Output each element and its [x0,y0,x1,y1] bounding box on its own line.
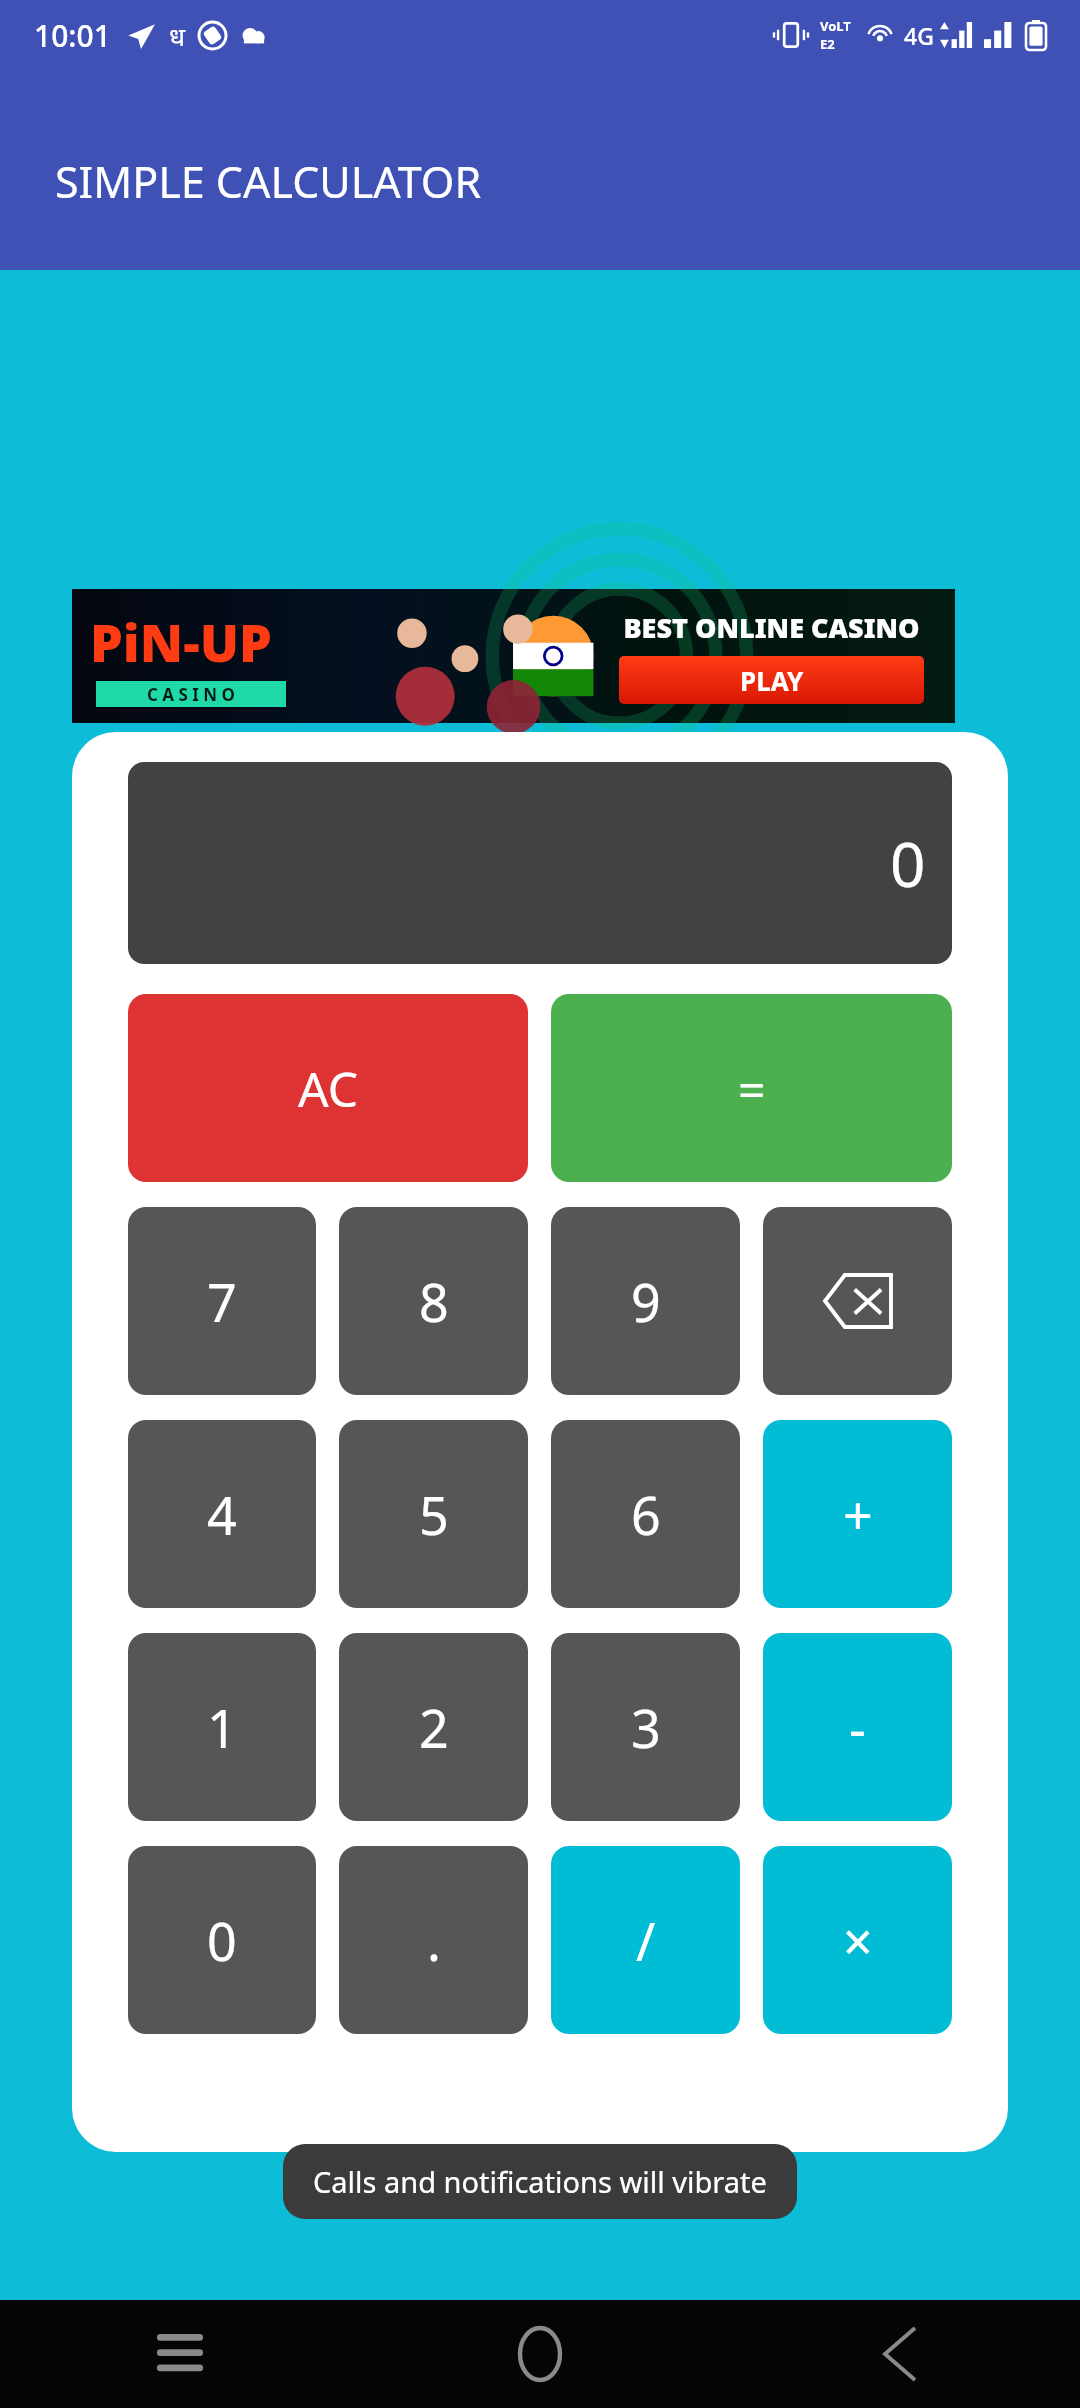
button[interactable]: AC [128,994,528,1182]
button[interactable]: 5 [339,1420,528,1608]
button[interactable]: 3 [551,1633,740,1821]
staticText: + [843,1479,873,1550]
staticText: 5 [419,1479,449,1550]
button[interactable]: Recent apps [0,2300,360,2408]
staticText: - [849,1692,866,1763]
staticText: SIMPLE CALCULATOR [55,152,482,211]
button[interactable]: × [763,1846,952,2034]
button[interactable]: 7 [128,1207,316,1395]
button[interactable]: 2 [339,1633,528,1821]
staticText: AC [298,1056,359,1121]
button[interactable]: / [551,1846,740,2034]
button[interactable]: . [339,1846,528,2034]
staticText: 10:01 [34,15,111,56]
staticText: ध [169,18,185,53]
staticText: × [843,1905,873,1976]
staticText: 9 [631,1266,661,1337]
button[interactable]: 6 [551,1420,740,1608]
staticText: PiN-UP [90,606,272,677]
staticText: PLAY [740,663,804,698]
button[interactable]: 0 [128,1846,316,2034]
button[interactable]: Back [720,2300,1080,2408]
staticText: 6 [631,1479,661,1550]
staticText: C A S I N O [147,683,236,706]
staticText: 7 [207,1266,237,1337]
button[interactable]: Home [360,2300,720,2408]
button[interactable]: = [551,994,952,1182]
staticText: VoLTE2 [820,17,858,53]
staticText: 3 [631,1692,661,1763]
staticText: BEST ONLINE CASINO [623,609,920,646]
staticText: 4G [904,20,934,51]
staticText: 0 [890,821,926,905]
button[interactable]: Backspace [763,1207,952,1395]
staticText: 0 [207,1905,237,1976]
button[interactable]: 9 [551,1207,740,1395]
staticText: 4 [207,1479,237,1550]
staticText: 1 [207,1692,237,1763]
staticText: Calls and notifications will vibrate [313,2162,767,2201]
staticText: = [738,1056,766,1121]
staticText: 2 [419,1692,449,1763]
button[interactable]: + [763,1420,952,1608]
staticText: . [427,1905,441,1976]
button[interactable]: 1 [128,1633,316,1821]
button[interactable]: - [763,1633,952,1821]
staticText: / [636,1905,656,1976]
staticText: 8 [419,1266,449,1337]
button[interactable]: 4 [128,1420,316,1608]
button[interactable]: Advertisement [72,589,955,723]
button[interactable]: 8 [339,1207,528,1395]
